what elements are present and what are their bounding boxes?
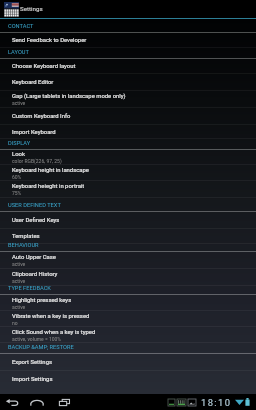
staticText: Templates [12, 233, 40, 240]
staticText: Custom Keyboard Info [12, 113, 71, 120]
staticText: Click Sound when a key is typed [12, 329, 96, 336]
button[interactable]: Import Keyboard [0, 125, 256, 139]
staticText: Import Settings [12, 376, 53, 383]
staticText: Import Keyboard [12, 129, 56, 136]
button[interactable]: Recent apps [58, 397, 72, 408]
button[interactable]: Send Feedback to Developer [0, 33, 256, 48]
button[interactable]: LAYOUT [0, 48, 256, 59]
staticText: active [12, 304, 26, 310]
button[interactable]: Export Settings [0, 354, 256, 371]
button[interactable]: Gap (Large tablets in landscape mode onl… [0, 91, 256, 108]
staticText: USER DEFINED TEXT [8, 202, 61, 209]
staticText: LAYOUT [8, 49, 29, 56]
button[interactable]: TYPE FEEDBACK [0, 286, 256, 295]
staticText: active [12, 100, 26, 106]
button[interactable]: Choose Keyboard layout [0, 59, 256, 74]
staticText: color RGB(226, 97, 25) [12, 158, 62, 164]
button[interactable]: USER DEFINED TEXT [0, 198, 256, 212]
button[interactable]: Import Settings [0, 371, 256, 392]
staticText: Keyboard heieght in portrait [12, 183, 85, 190]
button[interactable]: CONTACT [0, 19, 256, 33]
button[interactable]: Look [0, 150, 256, 165]
button[interactable]: Keyboard heieght in portrait [0, 181, 256, 198]
staticText: Keyboard height in landscape [12, 167, 89, 174]
staticText: 60% [12, 174, 22, 180]
staticText: Highlight pressed keys [12, 297, 72, 304]
staticText: Export Settings [12, 359, 52, 366]
staticText: User Defined Keys [12, 217, 60, 224]
staticText: Send Feedback to Developer [12, 37, 87, 44]
staticText: active [12, 278, 26, 284]
button[interactable]: Templates [0, 229, 256, 244]
button[interactable]: Auto Upper Case [0, 252, 256, 269]
button[interactable]: Vibrate when a key is pressed [0, 311, 256, 327]
button[interactable]: Click Sound when a key is typed [0, 327, 256, 343]
staticText: BEHAVIOUR [8, 242, 39, 249]
staticText: Choose Keyboard layout [12, 63, 76, 70]
button[interactable]: Custom Keyboard Info [0, 108, 256, 125]
button[interactable]: DISPLAY [0, 139, 256, 150]
button[interactable]: Back [5, 397, 19, 408]
staticText: 18:10 [201, 397, 232, 408]
staticText: 75% [12, 190, 22, 196]
staticText: Auto Upper Case [12, 254, 56, 261]
staticText: no [12, 320, 18, 326]
staticText: Keyboard Editor [12, 79, 54, 86]
staticText: TYPE FEEDBACK [8, 285, 51, 292]
staticText: BACKUP &AMP; RESTORE [8, 344, 74, 351]
button[interactable]: Keyboard height in landscape [0, 165, 256, 181]
staticText: active, volume = 100% [12, 336, 62, 342]
button[interactable]: BEHAVIOUR [0, 244, 256, 252]
button[interactable]: Highlight pressed keys [0, 295, 256, 311]
button[interactable]: Home [30, 397, 44, 408]
staticText: Settings [20, 5, 43, 12]
staticText: Gap (Large tablets in landscape mode onl… [12, 93, 126, 100]
button[interactable]: Clipboard History [0, 269, 256, 286]
staticText: CONTACT [8, 23, 34, 30]
button[interactable]: User Defined Keys [0, 212, 256, 229]
staticText: Look [12, 151, 25, 158]
button[interactable]: BACKUP &AMP; RESTORE [0, 343, 256, 354]
staticText: DISPLAY [8, 140, 31, 147]
staticText: Clipboard History [12, 271, 58, 278]
staticText: Vibrate when a key is pressed [12, 313, 90, 320]
staticText: active [12, 261, 26, 267]
button[interactable]: Keyboard Editor [0, 74, 256, 91]
